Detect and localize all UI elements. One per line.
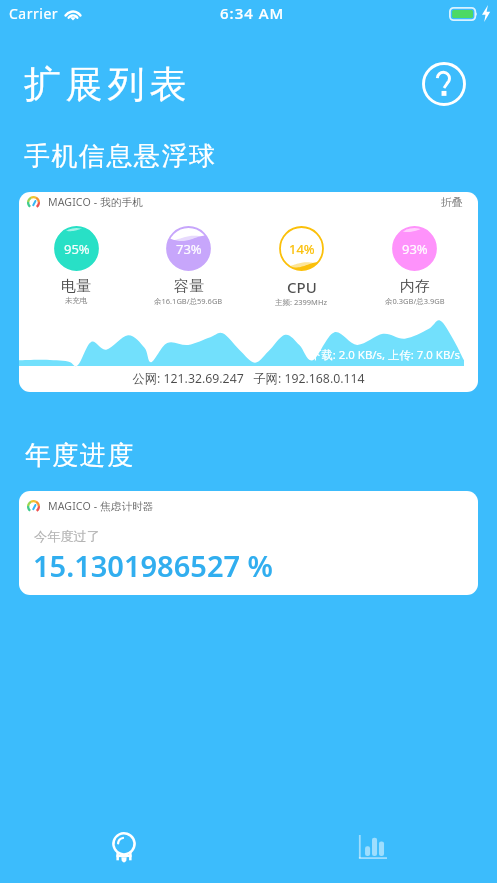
staticText: 未充电 xyxy=(65,296,88,305)
staticText: 折叠 xyxy=(441,195,463,209)
button[interactable]: Statistics xyxy=(248,806,497,883)
staticText: 余0.3GB/总3.9GB xyxy=(385,296,445,306)
staticText: MAGICO - 我的手机 xyxy=(48,195,143,209)
staticText: 今年度过了 xyxy=(34,528,100,545)
button[interactable]: MAGICO - 焦虑计时器 xyxy=(19,491,478,595)
button[interactable]: Tools xyxy=(0,806,248,883)
button[interactable]: Help xyxy=(422,62,466,106)
staticText: 95% xyxy=(64,240,90,258)
staticText: 手机信息悬浮球 xyxy=(24,140,217,173)
staticText: 余16.1GB/总59.6GB xyxy=(154,296,223,306)
staticText: 73% xyxy=(176,240,202,258)
staticText: 主频: 2399MHz xyxy=(275,297,328,307)
staticText: 公网: 121.32.69.247 子网: 192.168.0.114 xyxy=(19,370,478,387)
staticText: 容量 xyxy=(174,277,204,296)
staticText: 15.1301986527 % xyxy=(33,546,273,585)
staticText: 14% xyxy=(289,240,315,258)
staticText: 年度进度 xyxy=(24,439,134,472)
staticText: 内存 xyxy=(400,277,430,296)
staticText: 93% xyxy=(402,240,428,258)
staticText: 6:34 AM xyxy=(220,3,285,23)
staticText: 电量 xyxy=(61,277,91,296)
staticText: 下载: 2.0 KB/s, 上传: 7.0 KB/s xyxy=(310,347,460,363)
staticText: MAGICO - 焦虑计时器 xyxy=(48,499,154,513)
staticText: 扩展列表 xyxy=(24,61,192,108)
staticText: CPU xyxy=(287,277,317,297)
staticText: Carrier xyxy=(9,4,59,23)
button[interactable]: MAGICO - 我的手机 xyxy=(19,192,478,392)
